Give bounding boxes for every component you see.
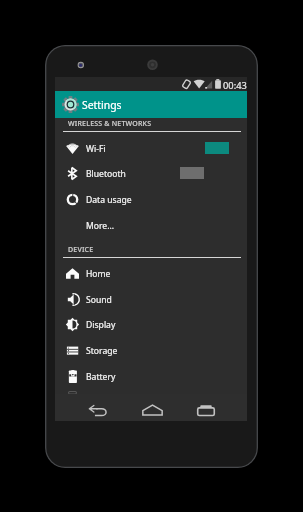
button[interactable]: Back — [86, 402, 110, 418]
staticText: Bluetooth — [86, 168, 126, 180]
staticText: Display — [86, 319, 116, 331]
button[interactable]: Wi-Fi — [55, 136, 247, 162]
button[interactable]: Bluetooth — [55, 161, 247, 187]
staticText: Settings — [82, 98, 122, 112]
staticText: WIRELESS & NETWORKS — [68, 119, 152, 129]
button[interactable]: Display — [55, 312, 247, 338]
staticText: Wi-Fi — [86, 143, 106, 155]
staticText: Home — [86, 268, 111, 280]
staticText: Storage — [86, 345, 118, 357]
button[interactable]: Settings — [55, 91, 247, 118]
button[interactable]: Home — [55, 261, 247, 287]
button[interactable]: Home — [139, 402, 165, 418]
staticText: More... — [86, 220, 115, 232]
button[interactable]: Data usage — [55, 187, 247, 213]
button[interactable]: Storage — [55, 338, 247, 364]
button[interactable]: Sound — [55, 287, 247, 313]
staticText: Sound — [86, 294, 112, 306]
staticText: DEVICE — [68, 245, 94, 255]
button[interactable]: On — [180, 142, 229, 154]
button[interactable]: Battery — [55, 364, 247, 390]
staticText: Data usage — [86, 194, 132, 206]
button[interactable]: More... — [55, 213, 247, 239]
staticText: Battery — [86, 371, 116, 383]
button[interactable]: Off — [180, 167, 229, 179]
button[interactable]: Recent apps — [194, 402, 218, 418]
staticText: 00:43 — [223, 79, 247, 92]
